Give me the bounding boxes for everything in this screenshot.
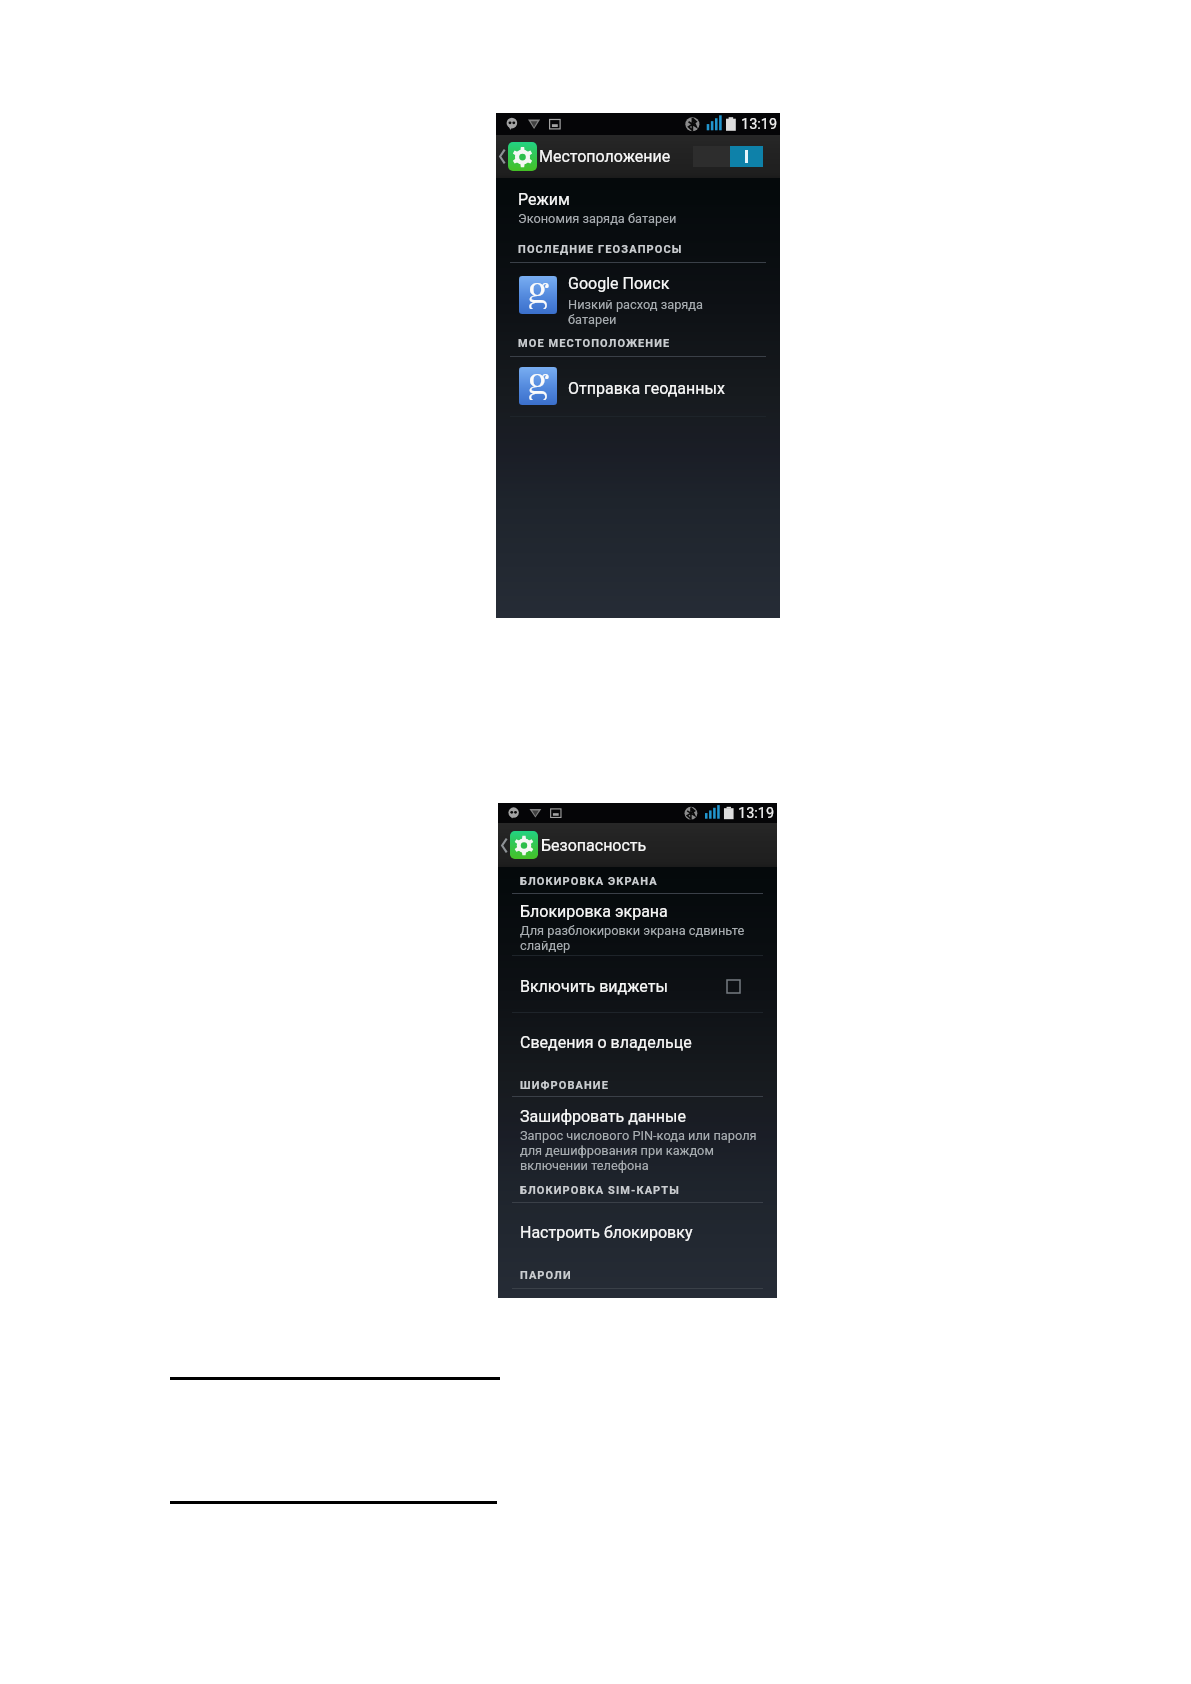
button[interactable]: g bbox=[496, 265, 780, 335]
button[interactable]: Режим bbox=[496, 179, 780, 229]
button[interactable]: Зашифровать данные bbox=[498, 1103, 777, 1175]
button[interactable]: Location switch on bbox=[693, 146, 763, 167]
staticText: Запрос числового PIN-кода или пароля для… bbox=[520, 1128, 765, 1173]
button[interactable]: Включить виджеты bbox=[498, 969, 777, 1013]
staticText: БЛОКИРОВКА ЭКРАНА bbox=[520, 875, 658, 888]
staticText: g bbox=[527, 367, 549, 400]
button[interactable]: Настроить блокировку bbox=[498, 1218, 777, 1250]
staticText: g bbox=[527, 276, 549, 309]
staticText: Google Поиск bbox=[568, 274, 670, 293]
staticText: Отправка геоданных bbox=[568, 379, 725, 398]
staticText: Включить виджеты bbox=[520, 977, 668, 996]
staticText: Безопасность bbox=[541, 836, 647, 855]
staticText: Настроить блокировку bbox=[520, 1223, 693, 1242]
staticText: Блокировка экрана bbox=[520, 902, 668, 921]
staticText: 13:19 bbox=[738, 805, 775, 822]
staticText: ШИФРОВАНИЕ bbox=[520, 1079, 609, 1092]
button[interactable]: Back bbox=[498, 823, 509, 867]
staticText: 13:19 bbox=[741, 116, 778, 133]
button[interactable]: Back bbox=[496, 135, 507, 178]
staticText: Для разблокировки экрана сдвиньте слайде… bbox=[520, 923, 748, 953]
staticText: ПАРОЛИ bbox=[520, 1269, 572, 1282]
button[interactable]: Блокировка экрана bbox=[498, 898, 777, 954]
staticText: Экономия заряда батареи bbox=[518, 211, 677, 226]
staticText: Зашифровать данные bbox=[520, 1107, 686, 1126]
staticText: ПОСЛЕДНИЕ ГЕОЗАПРОСЫ bbox=[518, 243, 683, 256]
staticText: БЛОКИРОВКА SIM-КАРТЫ bbox=[520, 1184, 680, 1197]
button[interactable]: g bbox=[496, 359, 780, 417]
staticText: Местоположение bbox=[539, 147, 671, 166]
staticText: Низкий расход заряда батареи bbox=[568, 297, 715, 327]
button[interactable]: Сведения о владельце bbox=[498, 1028, 777, 1060]
staticText: МОЕ МЕСТОПОЛОЖЕНИЕ bbox=[518, 337, 671, 350]
staticText: Режим bbox=[518, 190, 570, 209]
staticText: Сведения о владельце bbox=[520, 1033, 692, 1052]
